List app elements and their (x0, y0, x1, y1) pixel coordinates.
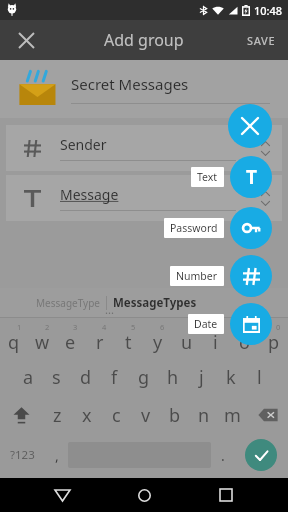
button[interactable]: Password (164, 218, 224, 238)
button[interactable]: Shift (0, 396, 42, 434)
staticText: Secret Messages (71, 74, 189, 94)
button[interactable]: Date (230, 303, 272, 345)
staticText: 5 (131, 322, 136, 332)
staticText: c (112, 403, 121, 428)
staticText: k (226, 365, 236, 390)
button[interactable]: . (211, 434, 234, 476)
staticText: 6 (160, 322, 165, 332)
button[interactable]: 5 (114, 320, 143, 358)
button[interactable]: Recents (206, 478, 246, 512)
staticText: s (52, 365, 61, 390)
button[interactable]: v (131, 396, 160, 434)
button[interactable]: z (42, 396, 72, 434)
staticText: Date (194, 317, 218, 331)
button[interactable]: x (72, 396, 102, 434)
button[interactable]: Sender (6, 125, 282, 171)
button[interactable]: MessageTypes (107, 289, 203, 317)
button[interactable]: d (71, 358, 100, 396)
button[interactable]: 3 (56, 320, 85, 358)
staticText: 10:48 (254, 3, 283, 18)
staticText: n (198, 403, 210, 428)
staticText: w (35, 330, 50, 355)
staticText: MessageTypes (113, 295, 197, 311)
button[interactable]: Close menu (228, 104, 272, 148)
staticText: t (125, 330, 132, 355)
staticText: x (82, 403, 92, 428)
button[interactable]: Home (124, 478, 164, 512)
button[interactable]: 4 (85, 320, 114, 358)
button[interactable]: Text (230, 156, 272, 198)
staticText: T (246, 164, 257, 190)
staticText: d (80, 365, 92, 390)
button[interactable]: 0 (259, 320, 288, 358)
button[interactable]: , (45, 434, 68, 476)
staticText: u (181, 330, 193, 355)
button[interactable]: j (187, 358, 216, 396)
button[interactable]: h (158, 358, 187, 396)
button[interactable]: g (129, 358, 158, 396)
button[interactable]: n (189, 396, 218, 434)
staticText: a (23, 365, 34, 390)
button[interactable]: a (14, 358, 42, 396)
button[interactable]: c (102, 396, 131, 434)
button[interactable]: b (160, 396, 189, 434)
staticText: b (169, 403, 181, 428)
button[interactable]: SAVE (243, 25, 280, 56)
staticText: Text (197, 170, 218, 184)
staticText: Message (60, 185, 119, 204)
button[interactable]: 6 (143, 320, 172, 358)
staticText: f (111, 365, 118, 390)
staticText: r (96, 330, 104, 355)
button[interactable]: l (245, 358, 274, 396)
staticText: Sender (60, 135, 107, 154)
staticText: Number (176, 269, 218, 283)
button[interactable]: k (216, 358, 245, 396)
staticText: SAVE (247, 33, 276, 48)
button[interactable]: 7 (172, 320, 201, 358)
button[interactable]: Enter (245, 439, 277, 471)
staticText: , (55, 446, 59, 465)
button[interactable]: ?123 (0, 434, 45, 476)
staticText: e (65, 330, 76, 355)
staticText: o (239, 330, 250, 355)
button[interactable]: MessageType (30, 290, 106, 316)
button[interactable]: Close (8, 22, 44, 58)
button[interactable]: Message (6, 175, 282, 221)
button[interactable]: s (42, 358, 71, 396)
staticText: i (213, 330, 218, 355)
button[interactable]: 9 (230, 320, 259, 358)
staticText: 0 (276, 322, 281, 332)
button[interactable]: Text (191, 167, 224, 187)
staticText: p (268, 330, 280, 355)
staticText: h (167, 365, 179, 390)
staticText: g (138, 365, 150, 390)
button[interactable]: m (218, 396, 247, 434)
staticText: 2 (45, 322, 50, 332)
button[interactable]: 2 (28, 320, 56, 358)
staticText: l (257, 365, 262, 390)
staticText: v (141, 403, 151, 428)
button[interactable]: Secret Messages (0, 60, 288, 118)
staticText: . (221, 446, 225, 465)
button[interactable]: 8 (201, 320, 230, 358)
button[interactable]: Reorder (248, 175, 282, 221)
staticText: j (199, 365, 204, 390)
button[interactable]: Password (230, 207, 272, 249)
button[interactable]: Reorder (248, 125, 282, 171)
staticText: m (224, 403, 241, 428)
staticText: 4 (102, 322, 107, 332)
staticText: ?123 (10, 447, 35, 463)
staticText: 3 (73, 322, 78, 332)
button[interactable]: Back (42, 478, 82, 512)
button[interactable]: 1 (0, 320, 28, 358)
button[interactable]: f (100, 358, 129, 396)
button[interactable]: Date (188, 314, 224, 334)
staticText: Password (170, 221, 218, 235)
button[interactable]: Backspace (247, 396, 288, 434)
staticText: y (153, 330, 163, 355)
button[interactable]: Number (230, 255, 272, 297)
staticText: MessageType (36, 296, 100, 310)
button[interactable]: Number (170, 266, 224, 286)
